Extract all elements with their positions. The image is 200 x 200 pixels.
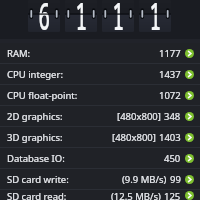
staticText: 99 (170, 173, 181, 186)
staticText: 1 (75, 0, 87, 40)
button[interactable]: RAM: (0, 43, 200, 64)
staticText: 125 (164, 190, 181, 200)
staticText: CPU integer: (7, 68, 63, 81)
staticText: 3D graphics: (7, 131, 63, 144)
staticText: Database IO: (7, 152, 65, 165)
staticText: 348 (164, 110, 181, 123)
staticText: 1 (112, 0, 124, 40)
staticText: RAM: (7, 47, 31, 60)
staticText: SD card read: (7, 190, 67, 200)
other: Details (185, 175, 194, 184)
staticText: 2D graphics: (7, 110, 63, 123)
other: Details (185, 49, 194, 58)
button[interactable]: SD card write: (0, 169, 200, 190)
staticText: 450 (164, 152, 181, 165)
other: Details (185, 112, 194, 121)
other: Details (185, 191, 194, 200)
staticText: CPU float-point: (7, 89, 78, 102)
button[interactable]: 3D graphics: (0, 127, 200, 148)
other: Details (185, 70, 194, 79)
button[interactable]: CPU integer: (0, 64, 200, 85)
staticText: 6 (38, 0, 50, 40)
staticText: 1403 (159, 131, 181, 144)
staticText: [480x800] (117, 110, 161, 123)
staticText: (12.5 MB/s) (111, 190, 161, 200)
staticText: 1072 (159, 89, 181, 102)
staticText: SD card write: (7, 173, 69, 186)
staticText: 1177 (159, 47, 181, 60)
button[interactable]: Database IO: (0, 148, 200, 169)
staticText: (9.9 MB/s) (122, 173, 167, 186)
button[interactable]: 2D graphics: (0, 106, 200, 127)
button[interactable]: SD card read: (0, 190, 200, 200)
staticText: 1437 (159, 68, 181, 81)
other: Details (185, 133, 194, 142)
other: Details (185, 154, 194, 163)
staticText: [480x800] (112, 131, 156, 144)
staticText: 1 (149, 0, 161, 40)
button[interactable]: CPU float-point: (0, 85, 200, 106)
other: Details (185, 91, 194, 100)
